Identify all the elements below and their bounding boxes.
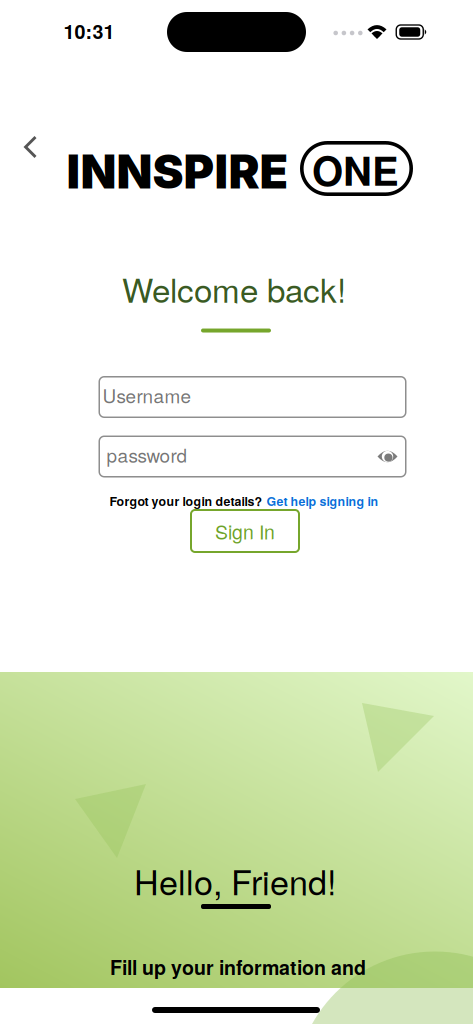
button[interactable]: Get help signing in xyxy=(266,492,378,510)
staticText: Username xyxy=(102,381,191,408)
staticText: Welcome back! xyxy=(122,265,346,312)
staticText: password xyxy=(106,441,187,468)
staticText: Forgot your login details? xyxy=(109,492,262,510)
button[interactable]: Sign In xyxy=(190,509,300,553)
staticText: Get help signing in xyxy=(266,492,378,510)
button[interactable]: Show password xyxy=(371,442,403,470)
button[interactable]: Back xyxy=(9,124,49,170)
staticText: 10:31 xyxy=(63,17,114,45)
staticText: ONE xyxy=(312,141,399,198)
staticText: INNSPIRE xyxy=(66,143,288,200)
staticText: Fill up your information and xyxy=(110,953,366,981)
staticText: Hello, Friend! xyxy=(134,856,336,905)
staticText: Sign In xyxy=(215,517,275,545)
